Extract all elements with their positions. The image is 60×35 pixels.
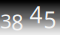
- button[interactable]: 3845: [0, 0, 60, 35]
- staticText: 5: [43, 5, 56, 35]
- staticText: 3: [0, 7, 11, 34]
- staticText: 8: [11, 8, 23, 35]
- staticText: 4: [29, 0, 42, 29]
